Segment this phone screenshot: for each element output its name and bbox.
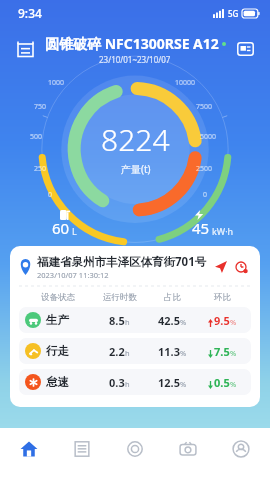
staticText: 11.3	[158, 344, 180, 359]
staticText: 0	[203, 190, 208, 200]
staticText: 0.5	[214, 375, 230, 390]
button[interactable]: Profile	[217, 428, 265, 480]
staticText: %	[230, 317, 237, 327]
staticText: h	[125, 379, 130, 389]
staticText: 行走	[46, 344, 69, 358]
button[interactable]: Camera	[164, 428, 212, 480]
staticText: %	[230, 379, 237, 389]
staticText: 生产	[46, 313, 69, 327]
button[interactable]: Calendar	[10, 34, 40, 64]
staticText: 9.5	[214, 313, 230, 328]
staticText: 5G	[228, 8, 239, 19]
staticText: 2.2	[109, 344, 125, 359]
staticText: 10000	[175, 78, 196, 88]
staticText: 环比	[214, 292, 231, 303]
staticText: 8.5	[109, 313, 125, 328]
staticText: 45	[192, 218, 210, 238]
staticText: 2500	[196, 164, 213, 174]
button[interactable]: 圆锥破碎 NFC1300RSE A12	[42, 34, 228, 65]
button[interactable]: Report	[230, 34, 260, 64]
staticText: 设备状态	[41, 292, 75, 303]
staticText: 2023/10/07 11:30:12	[37, 270, 109, 280]
button[interactable]: 怠速	[19, 369, 251, 395]
button[interactable]: 生产	[19, 307, 251, 333]
staticText: 怠速	[46, 375, 69, 389]
staticText: 12.5	[158, 375, 180, 390]
staticText: 0	[48, 190, 53, 200]
staticText: 0.3	[109, 375, 125, 390]
staticText: %	[230, 348, 237, 358]
staticText: 占比	[164, 292, 181, 303]
staticText: 圆锥破碎 NFC1300RSE A12	[45, 34, 219, 53]
staticText: 产量(t)	[121, 162, 151, 176]
button[interactable]: Locate	[211, 257, 231, 277]
staticText: h	[125, 348, 130, 358]
button[interactable]: 行走	[19, 338, 251, 364]
staticText: 9:34	[18, 5, 42, 21]
staticText: 5000	[200, 132, 217, 142]
staticText: %	[180, 379, 187, 389]
staticText: 500	[30, 132, 43, 142]
staticText: 7.5	[214, 344, 230, 359]
button[interactable]: List	[58, 428, 106, 480]
staticText: kW·h	[212, 225, 234, 237]
staticText: 60	[52, 218, 70, 238]
staticText: h	[125, 317, 130, 327]
button[interactable]: Scan	[111, 428, 159, 480]
button[interactable]: Home	[5, 428, 53, 480]
staticText: 福建省泉州市丰泽区体育街701号	[37, 254, 207, 270]
staticText: 8224	[101, 119, 170, 160]
button[interactable]: History	[231, 257, 251, 277]
staticText: 23/10/01~23/10/07	[99, 54, 171, 65]
staticText: 42.5	[158, 313, 180, 328]
staticText: 1000	[48, 78, 65, 88]
staticText: %	[180, 348, 187, 358]
staticText: L	[72, 225, 77, 237]
staticText: 运行时数	[103, 292, 137, 303]
staticText: 250	[34, 164, 47, 174]
staticText: 750	[34, 102, 47, 112]
button[interactable]: 福建省泉州市丰泽区体育街701号	[19, 254, 251, 280]
staticText: 7500	[196, 102, 213, 112]
staticText: %	[180, 317, 187, 327]
